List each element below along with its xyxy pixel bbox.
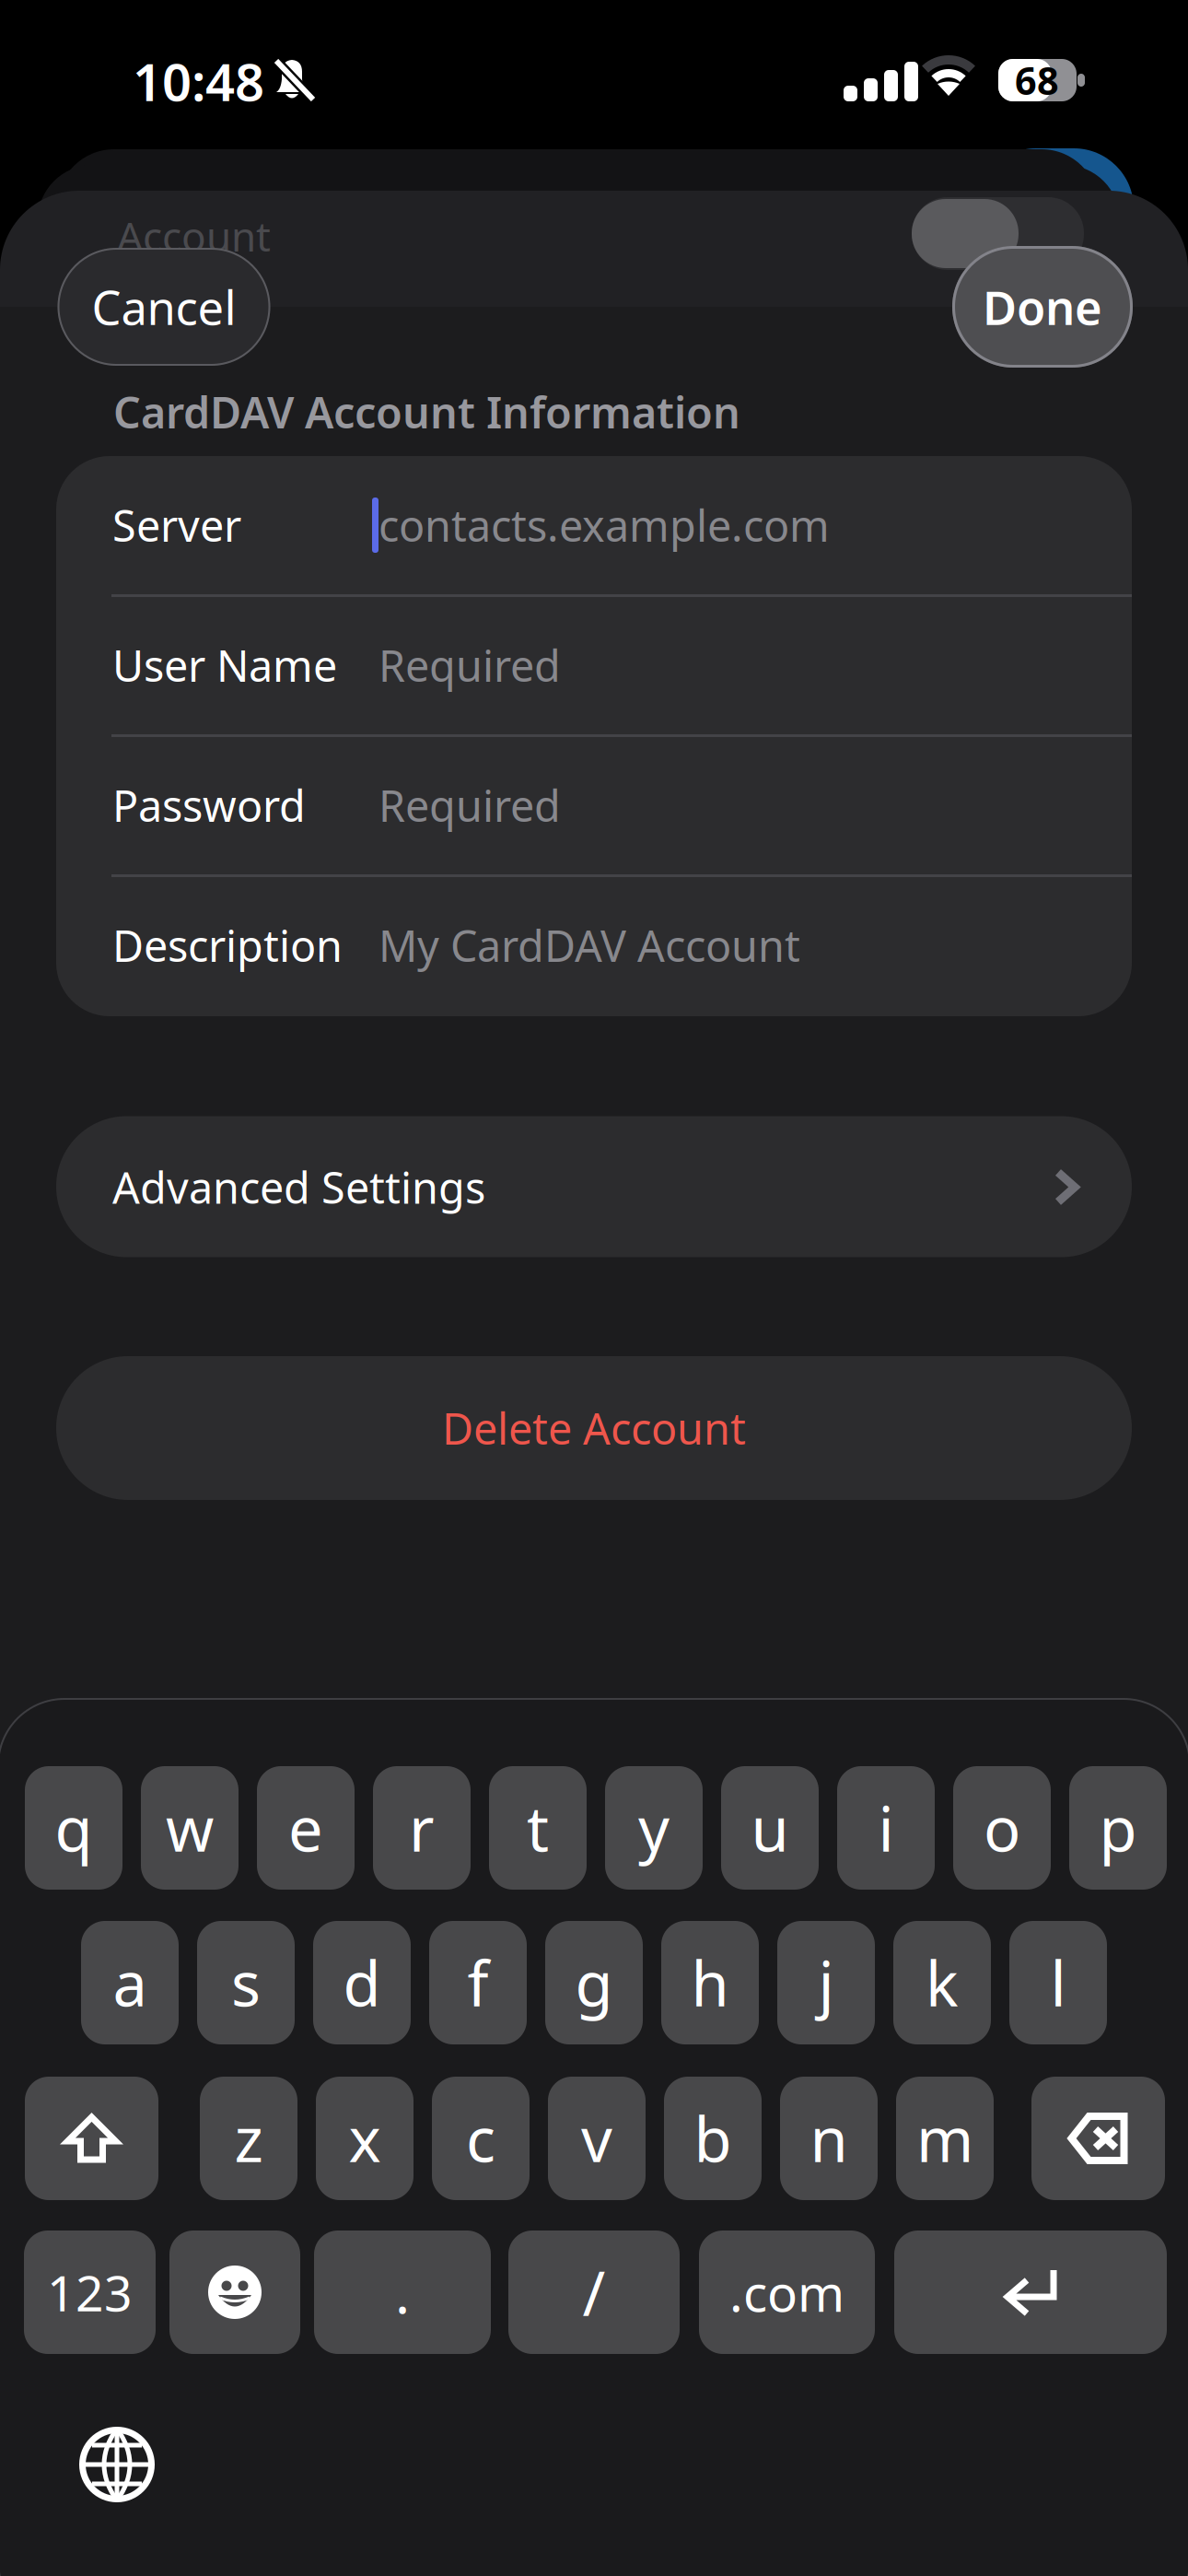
button[interactable]: l xyxy=(1009,1921,1107,2044)
staticText: i xyxy=(878,1787,894,1869)
staticText: p xyxy=(1099,1787,1137,1869)
button[interactable]: r xyxy=(373,1766,471,1890)
button[interactable]: u xyxy=(721,1766,819,1890)
button[interactable]: e xyxy=(257,1766,355,1890)
button[interactable]: x xyxy=(316,2077,413,2200)
button[interactable]: .com xyxy=(699,2231,875,2354)
staticText: k xyxy=(926,1942,959,2023)
button[interactable]: t xyxy=(489,1766,587,1890)
staticText: n xyxy=(810,2098,848,2179)
staticText: 10:48 xyxy=(133,47,264,115)
button[interactable]: f xyxy=(429,1921,527,2044)
button[interactable]: j xyxy=(777,1921,875,2044)
staticText: .com xyxy=(729,2259,844,2326)
button[interactable]: Advanced Settings xyxy=(56,1116,1132,1257)
staticText: . xyxy=(395,2256,410,2329)
staticText: w xyxy=(166,1787,214,1869)
button[interactable]: y xyxy=(605,1766,703,1890)
staticText: Password xyxy=(112,777,306,834)
staticText: q xyxy=(55,1787,93,1869)
button[interactable]: c xyxy=(432,2077,530,2200)
button[interactable]: Delete Account xyxy=(56,1356,1132,1500)
staticText: Delete Account xyxy=(442,1399,746,1457)
staticText: r xyxy=(409,1787,435,1869)
button[interactable]: 123 xyxy=(24,2231,156,2354)
button[interactable]: b xyxy=(664,2077,762,2200)
staticText: 123 xyxy=(47,2260,133,2325)
staticText: z xyxy=(234,2098,263,2179)
staticText: y xyxy=(638,1787,670,1869)
staticText: x xyxy=(349,2098,381,2179)
button[interactable]: q xyxy=(25,1766,122,1890)
staticText: e xyxy=(288,1787,323,1869)
staticText: Description xyxy=(112,917,343,974)
button[interactable]: s xyxy=(197,1921,295,2044)
staticText: s xyxy=(231,1942,261,2023)
staticText: contacts.example.com xyxy=(379,497,830,554)
button[interactable]: Delete xyxy=(1031,2077,1165,2200)
staticText: h xyxy=(691,1942,729,2023)
staticText: f xyxy=(467,1942,489,2023)
button[interactable]: w xyxy=(141,1766,239,1890)
staticText: Cancel xyxy=(92,276,236,338)
staticText: d xyxy=(343,1942,381,2023)
staticText: Advanced Settings xyxy=(112,1159,485,1216)
button[interactable]: Shift xyxy=(25,2077,158,2200)
button[interactable]: p xyxy=(1069,1766,1167,1890)
button[interactable]: Next keyboard xyxy=(78,2426,156,2503)
button[interactable]: z xyxy=(200,2077,297,2200)
button[interactable]: Emoji xyxy=(169,2231,300,2354)
staticText: g xyxy=(575,1942,613,2023)
staticText: Server xyxy=(112,497,241,554)
button[interactable]: o xyxy=(953,1766,1051,1890)
staticText: Done xyxy=(983,276,1102,338)
button[interactable]: m xyxy=(896,2077,994,2200)
button[interactable]: g xyxy=(545,1921,643,2044)
staticText: 68 xyxy=(1015,55,1059,105)
staticText: My CardDAV Account xyxy=(379,917,800,974)
button[interactable]: a xyxy=(81,1921,179,2044)
staticText: u xyxy=(751,1787,789,1869)
staticText: m xyxy=(916,2098,973,2179)
button[interactable]: Return xyxy=(894,2231,1167,2354)
button[interactable]: h xyxy=(661,1921,759,2044)
staticText: User Name xyxy=(112,637,337,694)
button[interactable]: / xyxy=(508,2231,680,2354)
button[interactable]: d xyxy=(313,1921,411,2044)
button[interactable]: Cancel xyxy=(58,248,270,366)
staticText: Account xyxy=(117,209,271,263)
staticText: v xyxy=(581,2098,612,2179)
button[interactable]: . xyxy=(314,2231,491,2354)
staticText: o xyxy=(984,1787,1020,1869)
staticText: Required xyxy=(379,777,561,834)
staticText: t xyxy=(527,1787,549,1869)
button[interactable]: n xyxy=(780,2077,878,2200)
staticText: a xyxy=(113,1942,147,2023)
button[interactable]: i xyxy=(837,1766,935,1890)
button[interactable]: k xyxy=(893,1921,991,2044)
staticText: l xyxy=(1050,1942,1066,2023)
staticText: c xyxy=(466,2098,495,2179)
staticText: b xyxy=(694,2098,732,2179)
staticText: Required xyxy=(379,637,561,694)
staticText: / xyxy=(582,2251,606,2333)
staticText: j xyxy=(818,1942,834,2023)
button[interactable]: Done xyxy=(952,246,1133,368)
staticText: CardDAV Account Information xyxy=(113,383,740,440)
button[interactable]: v xyxy=(548,2077,646,2200)
